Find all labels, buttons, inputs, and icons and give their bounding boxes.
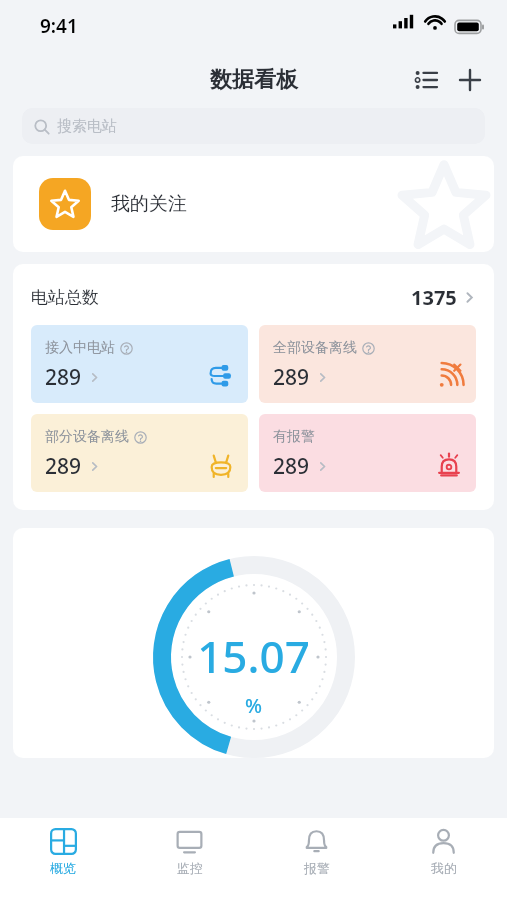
staticText: 289 xyxy=(45,452,82,481)
staticText: 1375 xyxy=(411,284,457,311)
staticText: 全部设备离线 xyxy=(273,339,357,357)
staticText: 搜索电站 xyxy=(57,117,117,136)
button[interactable]: 报警 xyxy=(253,818,380,900)
staticText: 15.07 xyxy=(197,626,310,686)
staticText: % xyxy=(245,692,263,719)
button[interactable]: 概览 xyxy=(0,818,126,900)
button[interactable]: 接入中电站 xyxy=(31,325,248,403)
staticText: 接入中电站 xyxy=(45,339,115,357)
staticText: 数据看板 xyxy=(210,66,298,94)
staticText: 监控 xyxy=(177,860,203,876)
button[interactable]: 搜索电站 xyxy=(22,108,485,144)
button[interactable]: 全部设备离线 xyxy=(259,325,476,403)
button[interactable]: 有报警 xyxy=(259,414,476,492)
button[interactable]: 15.07 xyxy=(13,528,494,758)
button[interactable]: Add xyxy=(453,63,487,97)
button[interactable]: List view xyxy=(409,63,443,97)
staticText: 289 xyxy=(45,363,82,392)
staticText: 9:41 xyxy=(40,13,78,39)
button[interactable]: 监控 xyxy=(126,818,253,900)
staticText: 289 xyxy=(273,363,310,392)
button[interactable]: 我的 xyxy=(380,818,507,900)
staticText: 我的 xyxy=(431,860,457,876)
button[interactable]: 电站总数 xyxy=(31,284,476,311)
staticText: 概览 xyxy=(50,860,76,876)
staticText: 部分设备离线 xyxy=(45,428,129,446)
staticText: 电站总数 xyxy=(31,287,99,308)
staticText: 有报警 xyxy=(273,428,315,446)
button[interactable]: 部分设备离线 xyxy=(31,414,248,492)
staticText: 报警 xyxy=(304,860,330,876)
staticText: 289 xyxy=(273,452,310,481)
button[interactable]: 我的关注 xyxy=(13,156,494,252)
staticText: 我的关注 xyxy=(111,192,187,216)
